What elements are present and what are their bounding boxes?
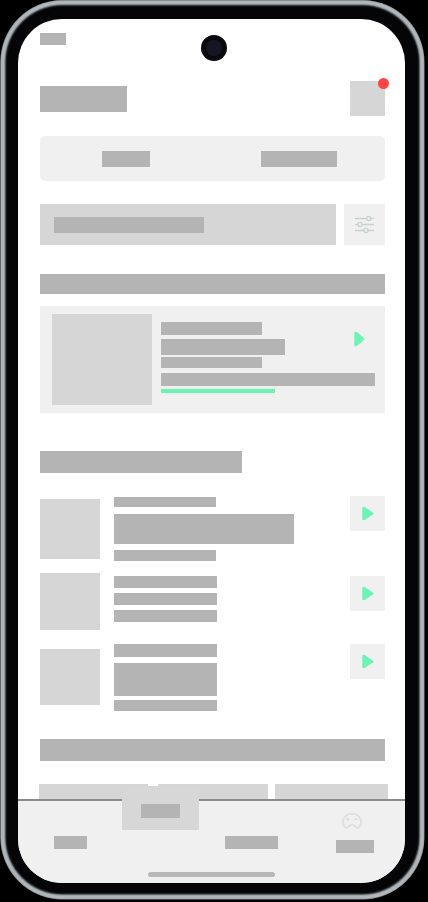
button[interactable] [122, 786, 199, 830]
button[interactable] [40, 136, 212, 181]
button[interactable] [40, 805, 100, 855]
button[interactable]: Profile [350, 81, 385, 116]
button[interactable] [212, 136, 385, 181]
button[interactable]: Play [350, 576, 385, 611]
button[interactable]: Play [350, 644, 385, 679]
button[interactable] [222, 805, 280, 855]
button[interactable] [40, 306, 385, 413]
button[interactable]: Filters [344, 204, 385, 245]
button[interactable] [40, 204, 336, 245]
button[interactable]: Play [350, 496, 385, 531]
button[interactable]: Games [330, 805, 388, 855]
